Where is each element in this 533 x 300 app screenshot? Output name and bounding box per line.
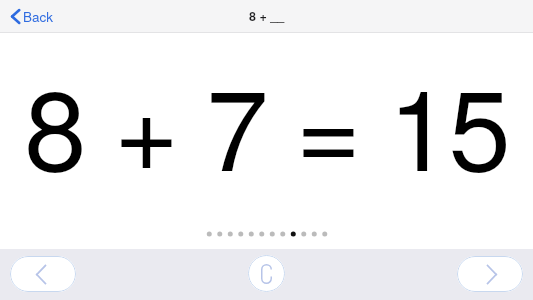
- button[interactable]: Clear: [248, 255, 285, 292]
- staticText: 8 + 7 = 15: [0, 42, 533, 202]
- staticText: 8 + __: [249, 7, 285, 25]
- button[interactable]: Next: [457, 256, 523, 292]
- button[interactable]: Back: [9, 3, 56, 30]
- button[interactable]: Previous: [10, 256, 76, 292]
- staticText: Back: [23, 7, 54, 26]
